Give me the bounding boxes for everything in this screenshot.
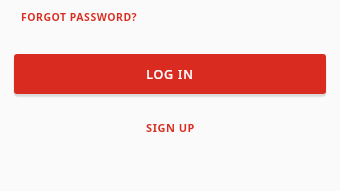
button[interactable]: LOG IN (14, 54, 326, 94)
staticText: SIGN UP (146, 120, 195, 135)
button[interactable]: SIGN UP (136, 115, 205, 140)
staticText: LOG IN (146, 66, 194, 83)
staticText: FORGOT PASSWORD? (21, 10, 138, 24)
button[interactable]: FORGOT PASSWORD? (14, 5, 145, 29)
